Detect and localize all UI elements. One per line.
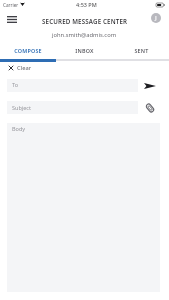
button[interactable]: To <box>7 79 138 92</box>
staticText: Clear <box>17 64 32 72</box>
staticText: INBOX <box>75 47 94 54</box>
staticText: SECURED MESSAGE CENTER <box>42 17 128 25</box>
button[interactable]: Clear <box>5 61 43 74</box>
staticText: Subject <box>12 104 31 111</box>
staticText: Carrier <box>3 2 19 8</box>
staticText: J <box>155 14 157 22</box>
staticText: COMPOSE <box>14 47 42 54</box>
button[interactable]: INBOX <box>56 43 112 58</box>
staticText: To <box>12 81 19 88</box>
staticText: john.smith@admis.com <box>52 31 117 39</box>
button[interactable]: Menu <box>4 12 20 26</box>
button[interactable]: Send <box>139 79 161 92</box>
button[interactable]: Attach file <box>140 101 160 114</box>
button[interactable]: Subject <box>7 101 138 114</box>
staticText: 4:53 PM <box>76 1 97 8</box>
staticText: Body <box>12 125 26 132</box>
staticText: SENT <box>134 47 149 54</box>
button[interactable]: SENT <box>113 43 169 58</box>
button[interactable]: COMPOSE <box>0 43 56 58</box>
button[interactable]: Account <box>151 13 161 23</box>
